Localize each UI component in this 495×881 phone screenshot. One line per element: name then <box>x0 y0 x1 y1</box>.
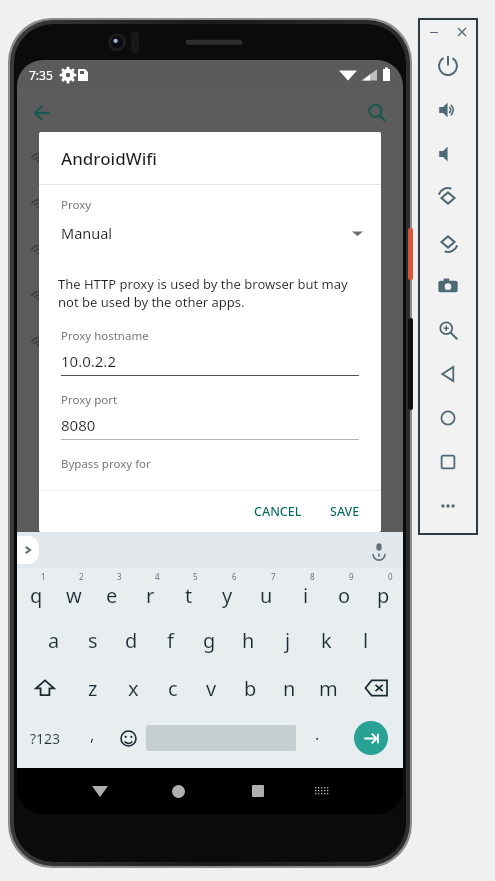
staticText: r <box>146 582 155 609</box>
staticText: 1 <box>41 571 46 582</box>
button[interactable]: Volume up <box>420 88 476 132</box>
staticText: Proxy port <box>61 392 118 408</box>
button[interactable]: Emoji <box>110 712 146 764</box>
staticText: m <box>319 675 338 702</box>
button[interactable]: Zoom <box>420 308 476 352</box>
button[interactable]: 7 <box>247 568 286 616</box>
button[interactable]: 1 <box>17 568 55 616</box>
staticText: Manual <box>61 223 113 243</box>
button[interactable]: a <box>35 616 73 664</box>
staticText: j <box>285 627 291 654</box>
button[interactable]: Home <box>420 396 476 440</box>
staticText: l <box>363 627 369 654</box>
button[interactable]: Rotate right <box>420 220 476 264</box>
button[interactable]: 2 <box>55 568 93 616</box>
staticText: x <box>128 675 139 702</box>
button[interactable]: s <box>73 616 112 664</box>
staticText: v <box>206 675 217 702</box>
button[interactable]: Voice input <box>367 538 391 562</box>
staticText: a <box>48 627 60 654</box>
staticText: y <box>222 582 233 609</box>
staticText: i <box>303 582 309 609</box>
button[interactable]: k <box>307 616 346 664</box>
button[interactable]: Backspace <box>348 664 403 712</box>
staticText: z <box>88 675 98 702</box>
button[interactable]: SAVE <box>321 496 369 527</box>
staticText: SAVE <box>330 503 360 520</box>
staticText: The HTTP proxy is used by the browser bu… <box>58 275 362 311</box>
button[interactable]: l <box>346 616 385 664</box>
button[interactable]: n <box>270 664 309 712</box>
staticText: w <box>66 582 82 609</box>
staticText: , <box>90 724 95 746</box>
staticText: 5 <box>193 571 198 582</box>
button[interactable]: Power <box>420 44 476 88</box>
staticText: ?123 <box>30 729 61 748</box>
button[interactable]: Home <box>153 768 204 814</box>
button[interactable]: Rotate left <box>420 176 476 220</box>
button[interactable]: m <box>309 664 348 712</box>
staticText: Proxy <box>61 197 92 213</box>
button[interactable]: c <box>153 664 192 712</box>
staticText: 3 <box>117 571 122 582</box>
staticText: k <box>321 627 332 654</box>
button[interactable]: Screenshot <box>420 264 476 308</box>
staticText: d <box>125 627 138 654</box>
staticText: AndroidWifi <box>61 147 157 170</box>
staticText: o <box>338 582 351 609</box>
button[interactable]: Manual <box>39 223 381 243</box>
staticText: s <box>88 627 98 654</box>
button[interactable]: 6 <box>208 568 247 616</box>
button[interactable]: f <box>151 616 190 664</box>
button[interactable]: b <box>231 664 270 712</box>
staticText: 7 <box>271 571 276 582</box>
button[interactable]: . <box>296 712 339 764</box>
button[interactable]: 5 <box>169 568 208 616</box>
button[interactable]: 0 <box>364 568 403 616</box>
staticText: 4 <box>155 571 160 582</box>
staticText: 8 <box>310 571 315 582</box>
button[interactable]: j <box>268 616 307 664</box>
button[interactable]: v <box>192 664 231 712</box>
button[interactable]: Close <box>453 23 471 41</box>
staticText: 6 <box>232 571 237 582</box>
staticText: . <box>315 723 320 745</box>
button[interactable]: Hide keyboard <box>74 768 125 814</box>
staticText: n <box>283 675 296 702</box>
button[interactable]: x <box>113 664 153 712</box>
button[interactable]: Volume down <box>420 132 476 176</box>
button[interactable]: Enter <box>339 712 403 764</box>
button[interactable]: More <box>420 484 476 528</box>
button[interactable]: Back <box>420 352 476 396</box>
button[interactable]: Recent apps <box>232 768 283 814</box>
staticText: u <box>260 582 273 609</box>
button[interactable]: CANCEL <box>245 496 311 527</box>
staticText: g <box>203 627 216 654</box>
button[interactable]: Switch keyboard <box>296 768 347 814</box>
staticText: 8080 <box>61 415 96 435</box>
button[interactable]: 3 <box>93 568 131 616</box>
button[interactable]: Overview <box>420 440 476 484</box>
button[interactable]: Proxy hostname <box>39 328 381 376</box>
button[interactable]: g <box>190 616 229 664</box>
button[interactable]: , <box>74 712 110 764</box>
button[interactable]: Minimize <box>425 23 443 41</box>
staticText: b <box>244 675 257 702</box>
button[interactable]: 4 <box>131 568 169 616</box>
button[interactable]: 9 <box>325 568 364 616</box>
button[interactable]: Expand toolbar <box>17 536 39 564</box>
staticText: q <box>30 582 43 609</box>
staticText: t <box>185 582 193 609</box>
button[interactable]: Proxy port <box>39 392 381 440</box>
staticText: e <box>106 582 118 609</box>
staticText: CANCEL <box>254 503 302 520</box>
button[interactable]: z <box>73 664 113 712</box>
button[interactable]: Shift <box>17 664 73 712</box>
button[interactable]: h <box>229 616 268 664</box>
staticText: f <box>167 627 174 654</box>
button[interactable]: ?123 <box>17 712 74 764</box>
button[interactable]: d <box>112 616 151 664</box>
staticText: h <box>242 627 255 654</box>
button[interactable]: 8 <box>286 568 325 616</box>
